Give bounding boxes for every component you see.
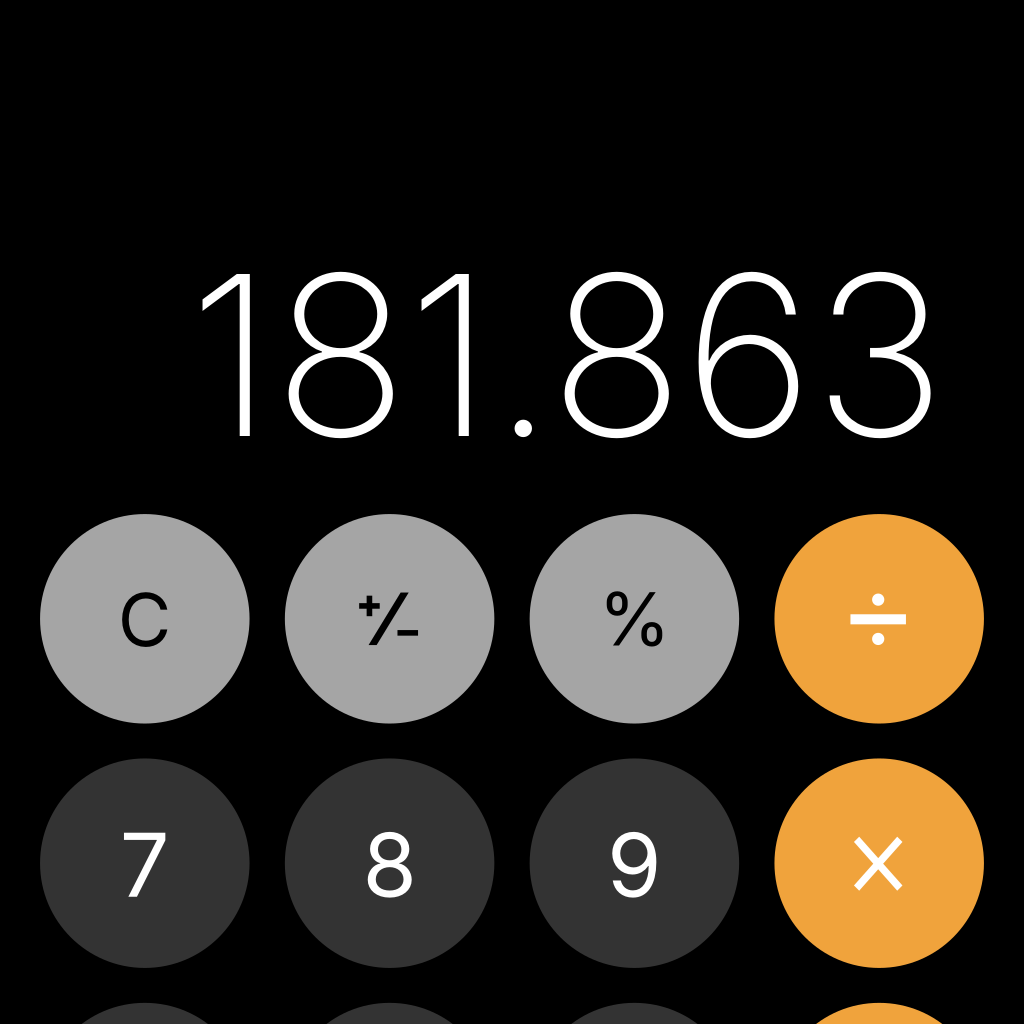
button[interactable]: 6	[530, 1003, 739, 1024]
staticText: 181.863	[188, 220, 945, 490]
button[interactable]: 5	[285, 1003, 494, 1024]
button[interactable]: 9	[530, 758, 739, 968]
staticText: %	[598, 574, 670, 663]
button[interactable]: Minus	[774, 1003, 984, 1024]
button[interactable]: 7	[40, 758, 250, 968]
button[interactable]: Divide	[774, 514, 984, 723]
button[interactable]: C	[40, 514, 250, 723]
staticText: C	[118, 575, 172, 664]
staticText: 9	[607, 811, 662, 918]
button[interactable]: %	[530, 514, 739, 723]
button[interactable]: 8	[285, 758, 494, 968]
staticText: 8	[363, 811, 417, 918]
button[interactable]: Plus or minus	[285, 514, 494, 723]
staticText: 7	[120, 811, 170, 918]
button[interactable]: 4	[40, 1003, 250, 1024]
button[interactable]: Multiply	[774, 758, 984, 968]
